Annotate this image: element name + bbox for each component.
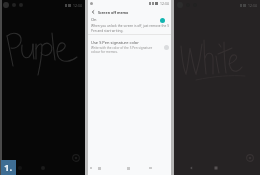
staticText: 1.: [4, 161, 13, 174]
staticText: 12:34: [160, 1, 169, 6]
staticText: When you unlock the screen is off, just …: [91, 24, 169, 33]
button[interactable]: Home: [214, 166, 218, 170]
other: Use S Pen signature color off: [164, 45, 169, 50]
other: Navigate up: [90, 9, 96, 15]
button[interactable]: Recents: [18, 166, 22, 170]
staticText: Write with the color of the S Pen signat…: [91, 46, 160, 54]
button[interactable]: Home: [41, 166, 45, 170]
staticText: 12:34: [73, 3, 82, 8]
button[interactable]: Back: [189, 166, 193, 170]
staticText: Screen off memo: [98, 10, 129, 15]
button[interactable]: Use S Pen signature color: [88, 40, 171, 54]
button[interactable]: Pen settings: [246, 154, 254, 162]
button[interactable]: Pen settings: [72, 154, 80, 162]
button[interactable]: 1.: [1, 160, 16, 175]
staticText: On: [91, 17, 97, 22]
staticText: Use S Pen signature color: [91, 40, 139, 45]
button[interactable]: Navigate up: [90, 8, 171, 16]
button[interactable]: On: [88, 16, 171, 25]
staticText: 12:34: [248, 3, 257, 8]
other: Screen off memo on: [160, 18, 165, 23]
